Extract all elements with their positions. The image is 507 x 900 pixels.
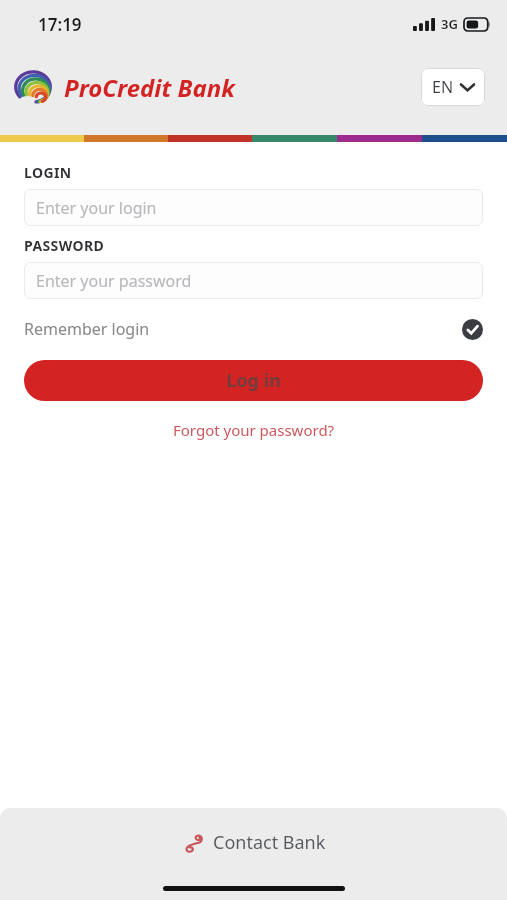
staticText: PASSWORD [24, 236, 105, 255]
button[interactable]: EN [421, 68, 485, 106]
staticText: ProCredit Bank [64, 71, 235, 104]
staticText: LOGIN [24, 163, 72, 182]
button[interactable]: Contact Bank [172, 826, 336, 859]
button[interactable]: Enter your password [24, 262, 483, 299]
staticText: Log in [226, 368, 281, 393]
staticText: Remember login [24, 318, 150, 340]
staticText: Enter your password [36, 270, 192, 292]
staticText: Enter your login [36, 197, 157, 219]
staticText: Contact Bank [213, 830, 326, 855]
staticText: 17:19 [38, 13, 82, 36]
button[interactable]: Enter your login [24, 189, 483, 226]
staticText: Forgot your password? [173, 420, 335, 440]
other: Remember login checked [462, 319, 483, 340]
button[interactable]: Log in [24, 360, 483, 401]
staticText: EN [432, 76, 454, 98]
staticText: 3G [441, 15, 458, 33]
button[interactable]: Forgot your password? [167, 417, 341, 443]
button[interactable]: Remember login [24, 316, 483, 342]
